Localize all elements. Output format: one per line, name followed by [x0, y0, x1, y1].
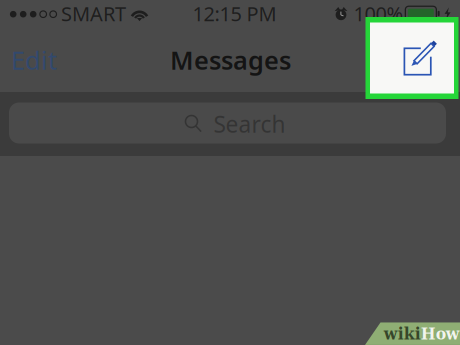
staticText: SMART: [61, 0, 126, 27]
staticText: Messages: [170, 43, 291, 77]
button[interactable]: Search: [9, 102, 446, 143]
button[interactable]: Compose new message: [365, 17, 458, 99]
staticText: Search: [213, 109, 285, 139]
staticText: 100%: [353, 0, 403, 27]
staticText: Edit: [11, 43, 57, 77]
staticText: 12:15 PM: [192, 0, 276, 27]
staticText: wiki: [384, 325, 421, 343]
button[interactable]: Edit: [1, 37, 67, 83]
staticText: How: [421, 325, 460, 343]
